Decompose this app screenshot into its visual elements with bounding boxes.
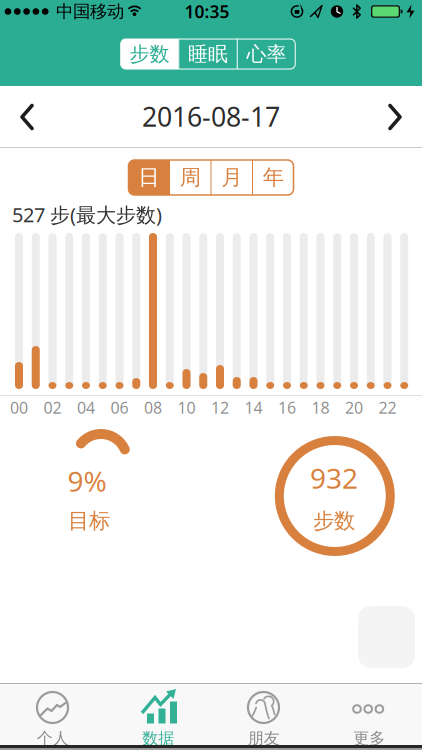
staticText: 中国移动	[56, 1, 124, 22]
staticText: 步数	[313, 508, 355, 534]
staticText: 日	[138, 164, 159, 191]
staticText: 02	[43, 397, 61, 418]
staticText: 年	[263, 164, 284, 191]
button[interactable]: 数据	[105, 683, 211, 746]
button[interactable]: 步数	[121, 39, 178, 69]
button[interactable]: 年	[253, 160, 293, 195]
staticText: 更多	[353, 729, 385, 748]
staticText: 06	[110, 397, 128, 418]
staticText: 睡眠	[188, 42, 228, 66]
staticText: 14	[244, 397, 262, 418]
button[interactable]: 周	[170, 160, 210, 195]
staticText: 10:35	[184, 0, 229, 23]
button[interactable]: 心率	[238, 39, 295, 69]
staticText: 朋友	[248, 729, 280, 748]
staticText: 932	[310, 459, 358, 497]
button[interactable]: 睡眠	[179, 39, 237, 69]
staticText: 目标	[68, 508, 110, 534]
staticText: 周	[180, 164, 201, 191]
staticText: 04	[77, 397, 95, 418]
staticText: 12	[211, 397, 229, 418]
staticText: 2016-08-17	[142, 99, 280, 134]
button[interactable]	[20, 103, 34, 130]
staticText: 步数	[129, 42, 169, 66]
staticText: 个人	[37, 729, 69, 748]
staticText: 9%	[67, 462, 106, 500]
staticText: 08	[144, 397, 162, 418]
button[interactable]: 朋友	[211, 683, 316, 746]
staticText: 16	[278, 397, 296, 418]
button[interactable]: 月	[211, 160, 252, 195]
button[interactable]: 日	[128, 160, 169, 195]
staticText: 10	[177, 397, 195, 418]
button[interactable]	[388, 103, 402, 130]
staticText: 心率	[246, 42, 286, 66]
staticText: 数据	[142, 729, 174, 748]
staticText: 00	[10, 397, 28, 418]
button[interactable]: 个人	[0, 683, 105, 746]
staticText: 20	[345, 397, 363, 418]
staticText: 527 步(最大步数)	[12, 201, 162, 228]
staticText: 22	[378, 397, 396, 418]
staticText: 月	[221, 164, 242, 191]
staticText: 18	[311, 397, 329, 418]
button[interactable]: 更多	[316, 683, 422, 746]
